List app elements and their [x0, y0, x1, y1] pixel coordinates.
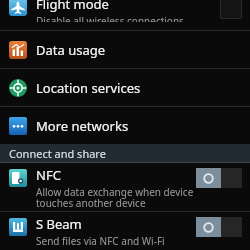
- button[interactable]: Flight mode: [0, 0, 250, 30]
- button[interactable]: Toggle off: [196, 168, 242, 188]
- staticText: NFC: [36, 166, 61, 184]
- staticText: Connect and share: [9, 146, 106, 161]
- staticText: Allow data exchange when device touches …: [36, 185, 194, 210]
- button[interactable]: Location services: [0, 69, 250, 106]
- staticText: Location services: [36, 79, 141, 97]
- button[interactable]: Toggle off: [196, 217, 242, 237]
- staticText: More networks: [36, 117, 129, 135]
- button[interactable]: More networks: [0, 107, 250, 144]
- button[interactable]: S Beam: [0, 212, 250, 250]
- button[interactable]: Flight mode checkbox: [220, 0, 242, 19]
- button[interactable]: Data usage: [0, 31, 250, 68]
- staticText: Flight mode: [36, 0, 109, 13]
- staticText: Data usage: [36, 41, 106, 59]
- staticText: S Beam: [36, 215, 82, 233]
- staticText: Disable all wireless connections: [36, 14, 184, 22]
- button[interactable]: NFC: [0, 163, 250, 211]
- staticText: Send files via NFC and Wi-Fi: [36, 234, 165, 248]
